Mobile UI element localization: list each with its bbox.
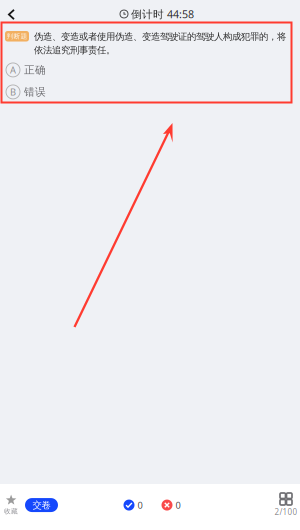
staticText: A: [10, 64, 16, 76]
staticText: 伪造、变造或者使用伪造、变造驾驶证的驾驶人构成犯罪的，将依法追究刑事责任。: [34, 31, 286, 56]
staticText: 倒计时 44:58: [131, 7, 194, 21]
staticText: 判断题: [6, 32, 27, 40]
button[interactable]: A: [0, 59, 300, 81]
staticText: 交卷: [32, 499, 50, 511]
staticText: 0: [175, 499, 180, 511]
staticText: 2/100: [274, 506, 297, 517]
staticText: 0: [137, 499, 142, 511]
button[interactable]: Question list: [277, 493, 298, 517]
staticText: B: [10, 86, 16, 98]
button[interactable]: B: [0, 81, 300, 103]
button[interactable]: 交卷: [25, 498, 58, 512]
staticText: 正确: [24, 63, 46, 76]
staticText: 收藏: [4, 507, 18, 515]
button[interactable]: Back: [0, 0, 23, 22]
button[interactable]: 收藏: [2, 495, 25, 515]
staticText: 错误: [24, 85, 46, 98]
